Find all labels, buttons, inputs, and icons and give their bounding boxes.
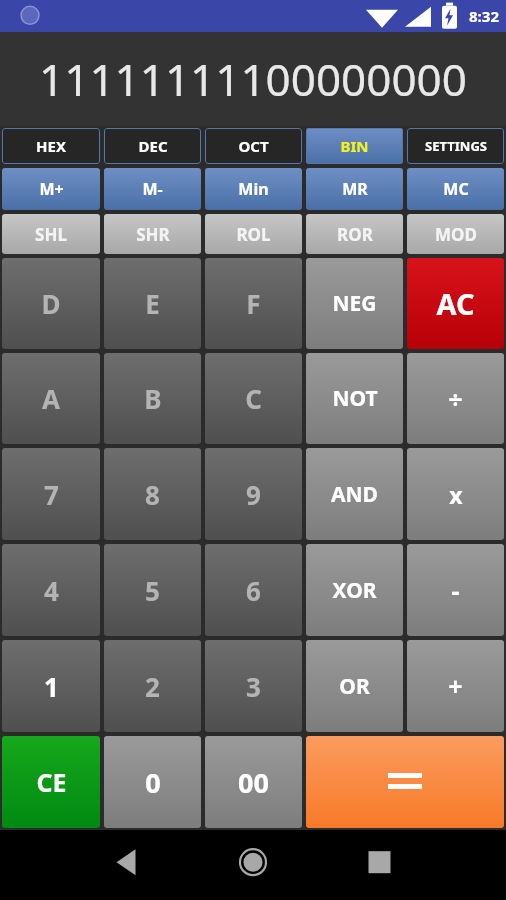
button[interactable]: 7 (2, 448, 100, 540)
button[interactable]: AND (306, 448, 403, 540)
button[interactable]: SETTINGS (407, 128, 504, 164)
button[interactable]: NOT (306, 353, 403, 444)
staticText: A (42, 381, 60, 416)
staticText: XOR (332, 576, 377, 605)
staticText: 6 (246, 573, 261, 608)
button[interactable]: AC (407, 258, 504, 349)
button[interactable]: x (407, 448, 504, 540)
button[interactable]: 0 (104, 736, 201, 828)
button[interactable]: 6 (205, 544, 302, 636)
staticText: 4 (44, 573, 59, 608)
staticText: MR (342, 178, 368, 200)
button[interactable]: MC (407, 168, 504, 210)
staticText: BIN (340, 136, 369, 156)
button[interactable]: SHL (2, 214, 100, 254)
button[interactable]: - (407, 544, 504, 636)
staticText: 11111111100000000 (39, 49, 467, 109)
button[interactable]: DEC (104, 128, 201, 164)
staticText: M+ (39, 178, 64, 200)
button[interactable]: 4 (2, 544, 100, 636)
button[interactable]: OCT (205, 128, 302, 164)
button[interactable]: ÷ (407, 353, 504, 444)
staticText: + (448, 669, 463, 703)
staticText: ROR (337, 223, 373, 246)
button[interactable]: BIN (306, 128, 403, 164)
staticText: E (145, 286, 160, 321)
button[interactable]: F (205, 258, 302, 349)
button[interactable]: E (104, 258, 201, 349)
staticText: CE (36, 765, 67, 799)
staticText: 9 (246, 477, 261, 512)
staticText: 8 (145, 477, 160, 512)
button[interactable]: 8 (104, 448, 201, 540)
staticText: MOD (435, 223, 477, 246)
staticText: 7 (44, 477, 59, 512)
button[interactable]: M- (104, 168, 201, 210)
button[interactable]: MOD (407, 214, 504, 254)
staticText: HEX (36, 136, 66, 156)
button[interactable]: XOR (306, 544, 403, 636)
staticText: 5 (145, 573, 160, 608)
button[interactable]: ROR (306, 214, 403, 254)
button[interactable]: 2 (104, 640, 201, 732)
staticText: ROL (236, 223, 271, 246)
button[interactable]: 1 (2, 640, 100, 732)
staticText: 3 (246, 669, 261, 704)
button[interactable]: C (205, 353, 302, 444)
staticText: OR (339, 672, 370, 701)
button[interactable]: NEG (306, 258, 403, 349)
staticText: NOT (332, 384, 378, 413)
staticText: M- (142, 178, 163, 200)
button[interactable]: 5 (104, 544, 201, 636)
staticText: AND (331, 480, 378, 509)
staticText: OCT (238, 136, 269, 156)
button[interactable]: M+ (2, 168, 100, 210)
staticText: NEG (332, 289, 377, 318)
staticText: Min (238, 178, 269, 200)
button[interactable]: ROL (205, 214, 302, 254)
staticText: AC (436, 284, 475, 323)
staticText: B (144, 381, 162, 416)
button[interactable]: 3 (205, 640, 302, 732)
button[interactable]: HEX (2, 128, 100, 164)
button[interactable]: Equals (306, 736, 504, 828)
button[interactable]: 9 (205, 448, 302, 540)
button[interactable]: 00 (205, 736, 302, 828)
staticText: SETTINGS (425, 137, 487, 155)
staticText: 0 (145, 764, 161, 801)
staticText: - (451, 573, 460, 607)
staticText: SHL (35, 223, 67, 246)
button[interactable]: A (2, 353, 100, 444)
button[interactable]: OR (306, 640, 403, 732)
button[interactable]: D (2, 258, 100, 349)
staticText: MC (443, 178, 469, 200)
staticText: 2 (145, 669, 160, 704)
staticText: ÷ (448, 382, 463, 416)
staticText: 8:32 (469, 6, 499, 26)
staticText: D (41, 286, 61, 321)
staticText: C (245, 381, 262, 416)
staticText: DEC (138, 136, 168, 156)
staticText: F (246, 286, 261, 321)
button[interactable]: MR (306, 168, 403, 210)
button[interactable]: SHR (104, 214, 201, 254)
button[interactable]: CE (2, 736, 100, 828)
staticText: 00 (238, 764, 269, 801)
staticText: 1 (44, 669, 59, 704)
staticText: x (449, 479, 463, 510)
button[interactable]: B (104, 353, 201, 444)
staticText: SHR (136, 223, 170, 246)
button[interactable]: + (407, 640, 504, 732)
button[interactable]: Min (205, 168, 302, 210)
